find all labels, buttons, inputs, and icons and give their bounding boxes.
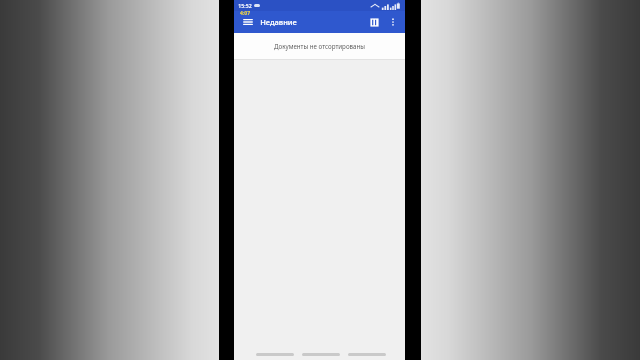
- button[interactable]: Open navigation drawer: [239, 13, 257, 31]
- button[interactable]: Документы не отсортированы: [234, 33, 405, 59]
- button[interactable]: Switch view: [364, 12, 384, 32]
- staticText: Документы не отсортированы: [274, 42, 365, 50]
- button[interactable]: More options: [384, 13, 402, 31]
- staticText: 15:52: [238, 2, 252, 9]
- staticText: Недавние: [260, 17, 297, 27]
- staticText: 4:07: [240, 10, 250, 17]
